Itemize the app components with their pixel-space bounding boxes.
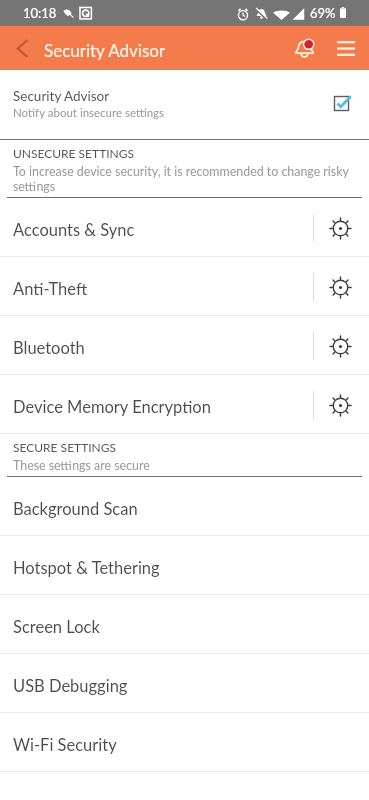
button[interactable]: Accounts & Sync [0, 198, 369, 257]
button[interactable]: Bluetooth [0, 316, 369, 375]
staticText: To increase device security, it is recom… [13, 164, 361, 194]
staticText: Anti-Theft [13, 279, 88, 299]
staticText: Hotspot & Tethering [13, 558, 160, 578]
staticText: Screen Lock [13, 617, 100, 637]
staticText: Accounts & Sync [13, 220, 135, 240]
button[interactable]: Notifications [291, 35, 317, 61]
button[interactable]: USB Debugging [0, 654, 369, 713]
staticText: 10:18 [23, 5, 57, 21]
staticText: SECURE SETTINGS [13, 440, 117, 454]
staticText: Security Advisor [13, 88, 110, 104]
staticText: Security Advisor [44, 40, 166, 60]
button[interactable]: Device Memory Encryption [0, 375, 369, 434]
button[interactable]: Background Scan [0, 477, 369, 536]
button[interactable]: Anti-Theft [0, 257, 369, 316]
button[interactable]: Hotspot & Tethering [0, 536, 369, 595]
staticText: Background Scan [13, 499, 138, 519]
staticText: Device Memory Encryption [13, 397, 211, 417]
button[interactable]: Screen Lock [0, 595, 369, 654]
button[interactable]: Menu [333, 35, 359, 61]
staticText: Wi-Fi Security [13, 735, 117, 755]
staticText: UNSECURE SETTINGS [13, 146, 135, 160]
staticText: Notify about insecure settings [13, 106, 165, 120]
staticText: These settings are secure [13, 458, 150, 473]
staticText: Bluetooth [13, 338, 85, 358]
button[interactable]: Back [0, 26, 40, 70]
button[interactable]: Wi-Fi Security [0, 713, 369, 772]
staticText: USB Debugging [13, 676, 128, 696]
staticText: 69% [310, 5, 336, 21]
button[interactable]: Security Advisor [0, 70, 369, 140]
